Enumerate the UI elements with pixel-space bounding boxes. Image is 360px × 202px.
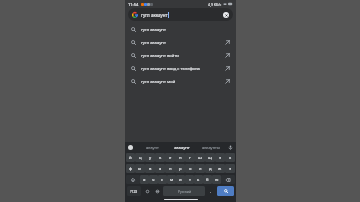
button[interactable]: ч — [149, 175, 158, 184]
button[interactable]: к — [155, 153, 165, 162]
button[interactable]: а — [155, 164, 165, 173]
staticText: 11:54 — [128, 2, 139, 7]
button[interactable]: с — [158, 175, 167, 184]
button[interactable]: м — [167, 175, 176, 184]
staticText: й — [129, 155, 132, 161]
staticText: е — [169, 155, 172, 161]
staticText: р — [179, 166, 182, 172]
button[interactable]: ш — [195, 153, 205, 162]
button[interactable]: л — [195, 164, 205, 173]
staticText: э — [229, 166, 232, 172]
staticText: д — [209, 166, 212, 172]
button[interactable]: ?123 — [127, 186, 141, 196]
other: Search — [131, 66, 136, 71]
button[interactable]: ь — [194, 175, 203, 184]
staticText: и — [179, 177, 182, 183]
staticText: у — [149, 155, 152, 161]
button[interactable]: т — [185, 175, 194, 184]
staticText: я — [143, 177, 146, 183]
staticText: гугл аккаунт — [141, 27, 166, 33]
button[interactable]: ж — [215, 164, 225, 173]
button[interactable]: е — [165, 153, 175, 162]
staticText: ш — [198, 155, 202, 161]
staticText: 4,9 КБ/с — [208, 2, 222, 7]
other: Fill query — [225, 79, 230, 84]
staticText: л — [199, 166, 202, 172]
button[interactable]: Change language — [152, 186, 162, 196]
button[interactable]: аккунт — [137, 145, 167, 150]
button[interactable]: п — [165, 164, 175, 173]
staticText: Русский — [178, 189, 191, 194]
button[interactable]: б — [203, 175, 212, 184]
button[interactable]: Search — [125, 49, 236, 62]
staticText: гугл аккаунт — [141, 12, 168, 18]
staticText: м — [170, 177, 174, 183]
button[interactable]: н — [175, 153, 185, 162]
button[interactable]: д — [205, 164, 215, 173]
button[interactable]: Backspace — [221, 175, 235, 184]
other: Fill query — [225, 40, 230, 45]
staticText: аккаунт — [174, 145, 190, 150]
button[interactable]: у — [145, 153, 155, 162]
staticText: в — [149, 166, 152, 172]
button[interactable]: ы — [135, 164, 145, 173]
button[interactable]: й — [126, 153, 135, 162]
other: Fill query — [225, 66, 230, 71]
button[interactable]: Emoji — [142, 186, 152, 196]
button[interactable]: х — [225, 153, 235, 162]
button[interactable]: Search — [125, 23, 236, 36]
button[interactable]: р — [175, 164, 185, 173]
button[interactable]: аккаунты — [196, 145, 225, 150]
staticText: щ — [208, 155, 212, 161]
button[interactable]: и — [176, 175, 185, 184]
button[interactable]: Search — [217, 186, 234, 196]
button[interactable]: Clear — [223, 12, 229, 18]
staticText: гугл аккаунт мой — [141, 79, 176, 85]
staticText: г — [189, 155, 191, 161]
staticText: гугл аккаунт — [141, 40, 166, 46]
button[interactable]: з — [215, 153, 225, 162]
button[interactable]: гугл аккаунт — [128, 8, 233, 21]
staticText: аккунт — [146, 145, 159, 150]
staticText: гугл аккаунт вход с телефона — [141, 66, 200, 72]
button[interactable]: ю — [212, 175, 221, 184]
button[interactable]: Search — [125, 36, 236, 49]
other: Fill query — [225, 53, 230, 58]
button[interactable]: г — [185, 153, 195, 162]
staticText: т — [189, 177, 191, 183]
button[interactable]: о — [185, 164, 195, 173]
button[interactable]: Shift — [126, 175, 140, 184]
staticText: х — [229, 155, 232, 161]
staticText: ф — [129, 166, 133, 172]
button[interactable]: Русский — [163, 186, 205, 196]
staticText: ?123 — [130, 189, 138, 194]
button[interactable]: я — [140, 175, 149, 184]
staticText: а — [159, 166, 162, 172]
staticText: ж — [218, 166, 222, 172]
button[interactable]: Search — [125, 75, 236, 88]
staticText: ц — [139, 155, 142, 161]
other: Search — [131, 27, 136, 32]
button[interactable]: в — [145, 164, 155, 173]
other: Search — [131, 53, 136, 58]
button[interactable]: ц — [135, 153, 145, 162]
staticText: ы — [138, 166, 142, 172]
button[interactable]: Google — [128, 145, 133, 150]
staticText: н — [179, 155, 182, 161]
button[interactable]: ф — [126, 164, 135, 173]
staticText: . — [210, 189, 212, 194]
button[interactable]: э — [225, 164, 235, 173]
staticText: ч — [152, 177, 155, 183]
staticText: к — [159, 155, 162, 161]
staticText: п — [169, 166, 172, 172]
staticText: ь — [197, 177, 200, 183]
staticText: б — [206, 177, 209, 183]
staticText: з — [219, 155, 222, 161]
button[interactable]: . — [206, 186, 216, 196]
button[interactable]: Search — [125, 62, 236, 75]
button[interactable]: щ — [205, 153, 215, 162]
button[interactable]: аккаунт — [167, 145, 196, 150]
other: Voice input — [228, 145, 233, 150]
other: Search — [131, 79, 136, 84]
staticText: гугл аккаунт войти — [141, 53, 179, 59]
